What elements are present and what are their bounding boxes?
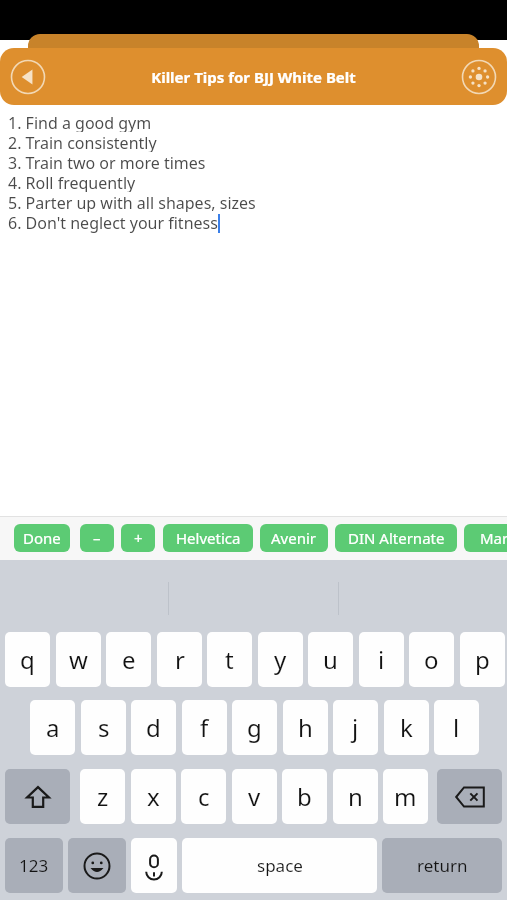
staticText: + <box>134 528 143 548</box>
button[interactable]: n <box>333 769 378 824</box>
staticText: g <box>247 711 262 744</box>
staticText: f <box>200 711 209 744</box>
button[interactable]: space <box>182 838 377 893</box>
staticText: 3. Train two or more times <box>8 152 206 172</box>
staticText: t <box>225 643 234 676</box>
staticText: 2. Train consistently <box>8 132 157 152</box>
button[interactable]: Done <box>14 524 70 552</box>
staticText: e <box>122 643 136 676</box>
staticText: Done <box>23 528 61 548</box>
button[interactable]: e <box>106 632 151 687</box>
staticText: c <box>198 780 210 813</box>
staticText: i <box>378 643 385 676</box>
button[interactable]: g <box>232 700 277 755</box>
staticText: Killer Tips for BJJ White Belt <box>151 67 356 87</box>
staticText: 1. Find a good gym <box>8 112 152 132</box>
staticText: a <box>46 711 60 744</box>
button[interactable]: Backspace <box>437 769 502 824</box>
button[interactable]: return <box>382 838 502 893</box>
button[interactable]: Settings <box>457 55 501 99</box>
staticText: n <box>348 780 363 813</box>
staticText: s <box>98 711 110 744</box>
button[interactable]: d <box>131 700 176 755</box>
button[interactable]: o <box>409 632 454 687</box>
staticText: 4. Roll frequently <box>8 172 136 192</box>
button[interactable]: x <box>131 769 176 824</box>
other: Emoji <box>83 852 111 880</box>
button[interactable]: u <box>308 632 353 687</box>
staticText: u <box>323 643 338 676</box>
other: Shift <box>25 784 51 810</box>
staticText: Mar <box>480 528 507 548</box>
staticText: d <box>146 711 161 744</box>
button[interactable]: j <box>333 700 378 755</box>
staticText: 123 <box>19 854 49 877</box>
button[interactable]: c <box>181 769 226 824</box>
staticText: b <box>297 780 312 813</box>
staticText: v <box>248 780 261 813</box>
button[interactable]: s <box>81 700 126 755</box>
staticText: m <box>394 780 417 813</box>
staticText: o <box>424 643 439 676</box>
button[interactable]: m <box>383 769 428 824</box>
staticText: y <box>274 643 287 676</box>
button[interactable]: z <box>80 769 125 824</box>
button[interactable]: l <box>434 700 479 755</box>
button[interactable]: Back <box>6 55 50 99</box>
other: Backspace <box>455 782 485 812</box>
staticText: – <box>93 528 101 548</box>
staticText: Avenir <box>271 528 317 548</box>
other: Dictation <box>141 853 167 879</box>
button[interactable]: t <box>207 632 252 687</box>
button[interactable]: Helvetica <box>163 524 253 552</box>
staticText: p <box>475 643 490 676</box>
button[interactable]: i <box>359 632 404 687</box>
button[interactable]: DIN Alternate <box>335 524 457 552</box>
staticText: x <box>147 780 160 813</box>
button[interactable]: b <box>282 769 327 824</box>
button[interactable]: p <box>460 632 505 687</box>
button[interactable]: k <box>384 700 429 755</box>
staticText: z <box>97 780 109 813</box>
button[interactable]: – <box>80 524 114 552</box>
staticText: DIN Alternate <box>348 528 445 548</box>
button[interactable]: Avenir <box>260 524 328 552</box>
staticText: 6. Don't neglect your fitness <box>8 212 218 234</box>
button[interactable]: + <box>121 524 155 552</box>
button[interactable]: w <box>56 632 101 687</box>
staticText: j <box>352 711 359 744</box>
button[interactable]: a <box>30 700 75 755</box>
button[interactable]: q <box>5 632 50 687</box>
button[interactable]: v <box>232 769 277 824</box>
button[interactable]: Emoji <box>68 838 126 893</box>
button[interactable]: y <box>258 632 303 687</box>
staticText: q <box>20 643 35 676</box>
staticText: h <box>298 711 313 744</box>
staticText: k <box>400 711 413 744</box>
staticText: w <box>69 643 88 676</box>
staticText: return <box>417 854 468 877</box>
button[interactable]: h <box>283 700 328 755</box>
staticText: 5. Parter up with all shapes, sizes <box>8 192 256 212</box>
staticText: space <box>257 854 303 877</box>
button[interactable]: 123 <box>5 838 63 893</box>
staticText: l <box>453 711 460 744</box>
staticText: Helvetica <box>176 528 241 548</box>
staticText: r <box>175 643 185 676</box>
button[interactable]: r <box>157 632 202 687</box>
button[interactable]: Dictation <box>131 838 177 893</box>
button[interactable]: Mar <box>464 524 507 552</box>
button[interactable]: Shift <box>5 769 70 824</box>
button[interactable]: f <box>182 700 227 755</box>
